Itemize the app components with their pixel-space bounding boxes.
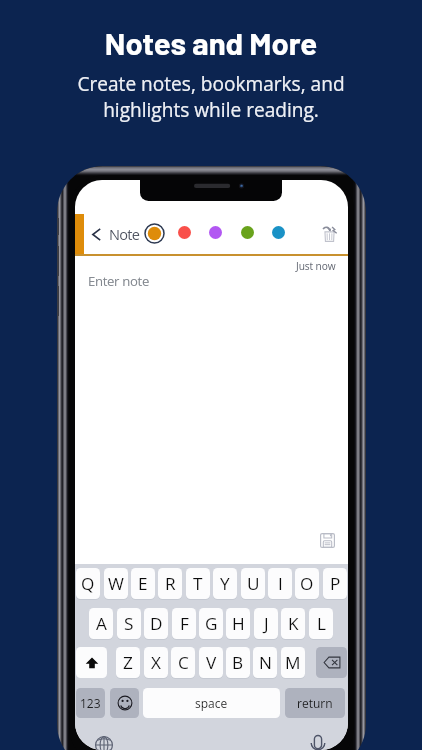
button[interactable]: 123 — [76, 688, 105, 718]
button[interactable]: E — [131, 568, 155, 599]
staticText: Note — [109, 224, 140, 244]
staticText: T — [193, 572, 203, 595]
staticText: W — [108, 572, 124, 595]
staticText: N — [259, 651, 272, 674]
staticText: Create notes, bookmarks, and highlights … — [0, 71, 422, 122]
button[interactable]: U — [241, 568, 265, 599]
staticText: Enter note — [88, 272, 149, 290]
button[interactable]: Orange colour — [144, 223, 165, 244]
staticText: B — [232, 651, 244, 674]
staticText: H — [232, 612, 245, 635]
button[interactable]: Q — [76, 568, 100, 599]
staticText: Y — [220, 572, 230, 595]
button[interactable]: A — [89, 608, 113, 639]
staticText: U — [247, 572, 260, 595]
staticText: F — [180, 612, 189, 635]
button[interactable]: F — [172, 608, 196, 639]
staticText: J — [264, 612, 269, 635]
button[interactable]: O — [295, 568, 319, 599]
staticText: R — [165, 572, 176, 595]
button[interactable]: K — [281, 608, 305, 639]
button[interactable]: Colour — [209, 226, 222, 239]
button[interactable]: T — [186, 568, 210, 599]
button[interactable]: C — [171, 647, 195, 678]
button[interactable]: Delete — [319, 223, 341, 245]
button[interactable]: Z — [116, 647, 140, 678]
staticText: E — [138, 572, 148, 595]
button[interactable]: Back — [85, 223, 107, 245]
staticText: K — [288, 612, 299, 635]
button[interactable]: B — [226, 647, 250, 678]
staticText: Notes and More — [0, 24, 422, 61]
staticText: 123 — [80, 695, 101, 711]
button[interactable]: R — [158, 568, 182, 599]
staticText: V — [206, 651, 217, 674]
button[interactable]: Save — [315, 528, 339, 552]
button[interactable]: X — [144, 647, 168, 678]
staticText: Just now — [296, 259, 336, 273]
button[interactable]: Backspace — [316, 647, 347, 678]
button[interactable]: G — [199, 608, 223, 639]
button[interactable]: W — [104, 568, 128, 599]
staticText: A — [96, 612, 107, 635]
button[interactable]: L — [309, 608, 333, 639]
button[interactable]: Emoji — [110, 688, 139, 718]
button[interactable]: N — [253, 647, 277, 678]
button[interactable]: H — [226, 608, 250, 639]
staticText: O — [300, 572, 314, 595]
staticText: P — [330, 572, 341, 595]
button[interactable]: Y — [213, 568, 237, 599]
staticText: I — [278, 572, 283, 595]
staticText: G — [205, 612, 218, 635]
button[interactable]: J — [254, 608, 278, 639]
staticText: D — [150, 612, 163, 635]
staticText: space — [195, 695, 228, 711]
button[interactable]: Shift — [76, 647, 107, 678]
staticText: S — [124, 612, 134, 635]
button[interactable]: M — [281, 647, 305, 678]
button[interactable]: Colour — [272, 226, 285, 239]
button[interactable]: S — [117, 608, 141, 639]
staticText: X — [151, 651, 161, 674]
staticText: Q — [81, 572, 95, 595]
button[interactable]: Switch keyboard — [93, 734, 115, 750]
button[interactable]: V — [199, 647, 223, 678]
staticText: return — [297, 695, 333, 711]
button[interactable]: Dictate — [307, 735, 329, 750]
staticText: M — [285, 651, 301, 674]
staticText: Z — [123, 651, 133, 674]
staticText: C — [178, 651, 189, 674]
button[interactable]: Colour — [178, 226, 191, 239]
button[interactable]: return — [285, 688, 345, 718]
button[interactable]: Colour — [241, 226, 254, 239]
button[interactable]: D — [144, 608, 168, 639]
staticText: L — [317, 612, 326, 635]
button[interactable]: space — [143, 688, 280, 718]
button[interactable]: I — [268, 568, 292, 599]
button[interactable]: P — [323, 568, 347, 599]
